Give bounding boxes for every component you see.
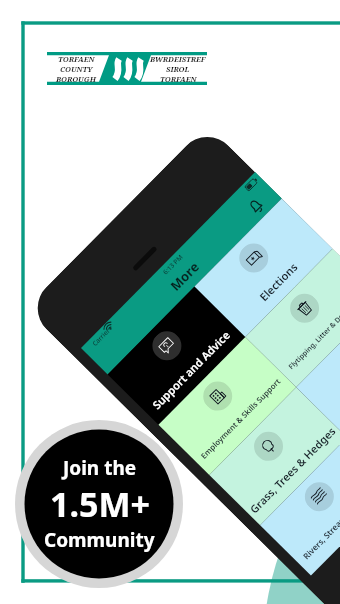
button[interactable]: Rivers, Streams & Flooding bbox=[260, 437, 340, 576]
staticText: 1.5M+ bbox=[50, 481, 150, 527]
staticText: SIROL bbox=[166, 64, 190, 74]
button[interactable]: Flytipping, Litter & Dog Fouling bbox=[245, 249, 340, 387]
button[interactable]: Elections bbox=[194, 198, 332, 337]
staticText: Employment & Skills Support bbox=[198, 376, 282, 461]
staticText: Flytipping, Litter & Dog Fouling bbox=[286, 289, 340, 371]
staticText: Join the bbox=[63, 455, 137, 481]
staticText: BOROUGH bbox=[56, 74, 96, 84]
button[interactable]: Grass, Trees & Hedges bbox=[209, 387, 340, 525]
button[interactable]: TORFAEN bbox=[47, 52, 207, 85]
button[interactable]: Street Lighting bbox=[296, 299, 340, 437]
button[interactable]: Notifications bbox=[240, 190, 273, 223]
button[interactable]: Support and Advice bbox=[108, 287, 245, 425]
staticText: COUNTY bbox=[60, 64, 93, 74]
staticText: 6:13 PM bbox=[161, 252, 185, 276]
staticText: TORFAEN bbox=[160, 74, 197, 84]
button[interactable]: Join the bbox=[25, 455, 173, 555]
staticText: Community bbox=[44, 527, 155, 553]
staticText: Elections bbox=[256, 259, 300, 304]
staticText: TORFAEN bbox=[58, 54, 95, 64]
staticText: Grass, Trees & Hedges bbox=[247, 424, 338, 516]
staticText: Carrier bbox=[90, 326, 112, 348]
staticText: Rivers, Streams & Flooding bbox=[300, 477, 340, 561]
button[interactable]: Employment & Skills Support bbox=[158, 337, 296, 475]
staticText: BWRDEISTREF bbox=[150, 54, 206, 64]
staticText: More bbox=[166, 258, 203, 294]
staticText: Support and Advice bbox=[149, 327, 233, 412]
